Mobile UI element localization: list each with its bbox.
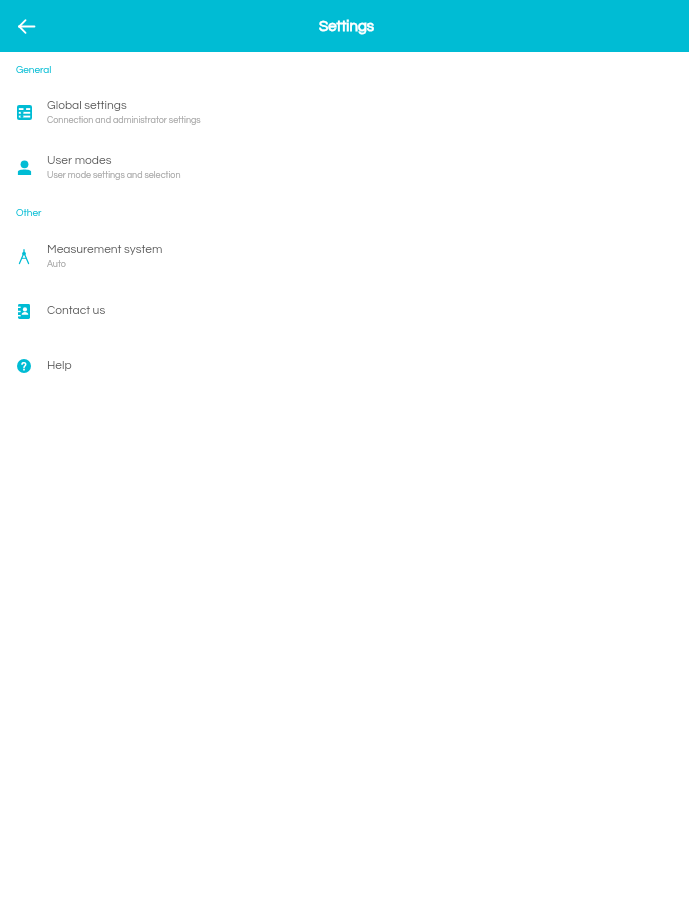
button[interactable]: Measurement system (0, 228, 689, 283)
staticText: Other (16, 208, 42, 218)
button[interactable]: Back (9, 9, 43, 43)
staticText: Auto (47, 260, 66, 269)
staticText: Settings (319, 19, 375, 34)
staticText: User mode settings and selection (47, 171, 181, 180)
button[interactable]: Help (0, 338, 689, 393)
button[interactable]: Global settings (0, 84, 689, 139)
staticText: General (16, 65, 52, 75)
staticText: Help (47, 359, 72, 371)
staticText: User modes (47, 154, 112, 166)
staticText: Measurement system (47, 243, 163, 255)
staticText: Global settings (47, 99, 127, 111)
button[interactable]: Contact us (0, 283, 689, 338)
button[interactable]: User modes (0, 139, 689, 194)
staticText: Connection and administrator settings (47, 116, 201, 125)
staticText: Contact us (47, 304, 106, 316)
